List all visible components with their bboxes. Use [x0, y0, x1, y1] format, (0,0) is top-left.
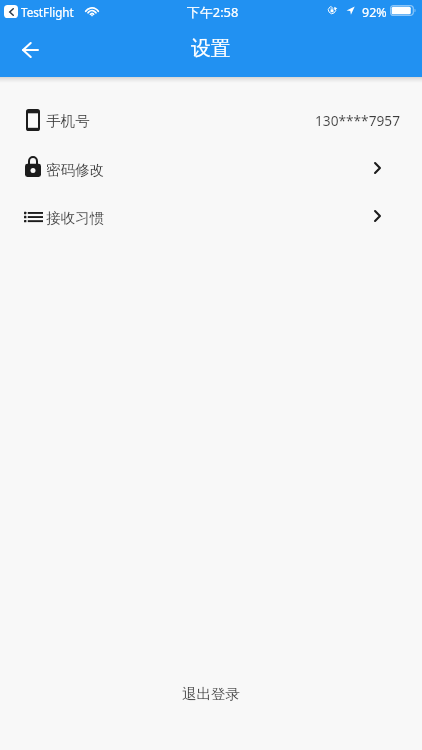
- button[interactable]: 接收习惯: [0, 193, 422, 242]
- staticText: 退出登录: [182, 685, 240, 703]
- button[interactable]: Back to TestFlight: [4, 5, 18, 18]
- staticText: 92%: [362, 4, 387, 21]
- staticText: 130****7957: [315, 111, 400, 130]
- button[interactable]: 退出登录: [182, 676, 240, 712]
- button[interactable]: 手机号: [0, 96, 422, 145]
- staticText: TestFlight: [21, 4, 74, 20]
- button[interactable]: Back: [12, 32, 48, 68]
- staticText: 手机号: [46, 112, 90, 130]
- staticText: 设置: [191, 36, 231, 61]
- button[interactable]: 密码修改: [0, 145, 422, 194]
- staticText: 接收习惯: [46, 209, 105, 227]
- staticText: 下午2:58: [187, 3, 239, 21]
- staticText: 密码修改: [46, 161, 105, 179]
